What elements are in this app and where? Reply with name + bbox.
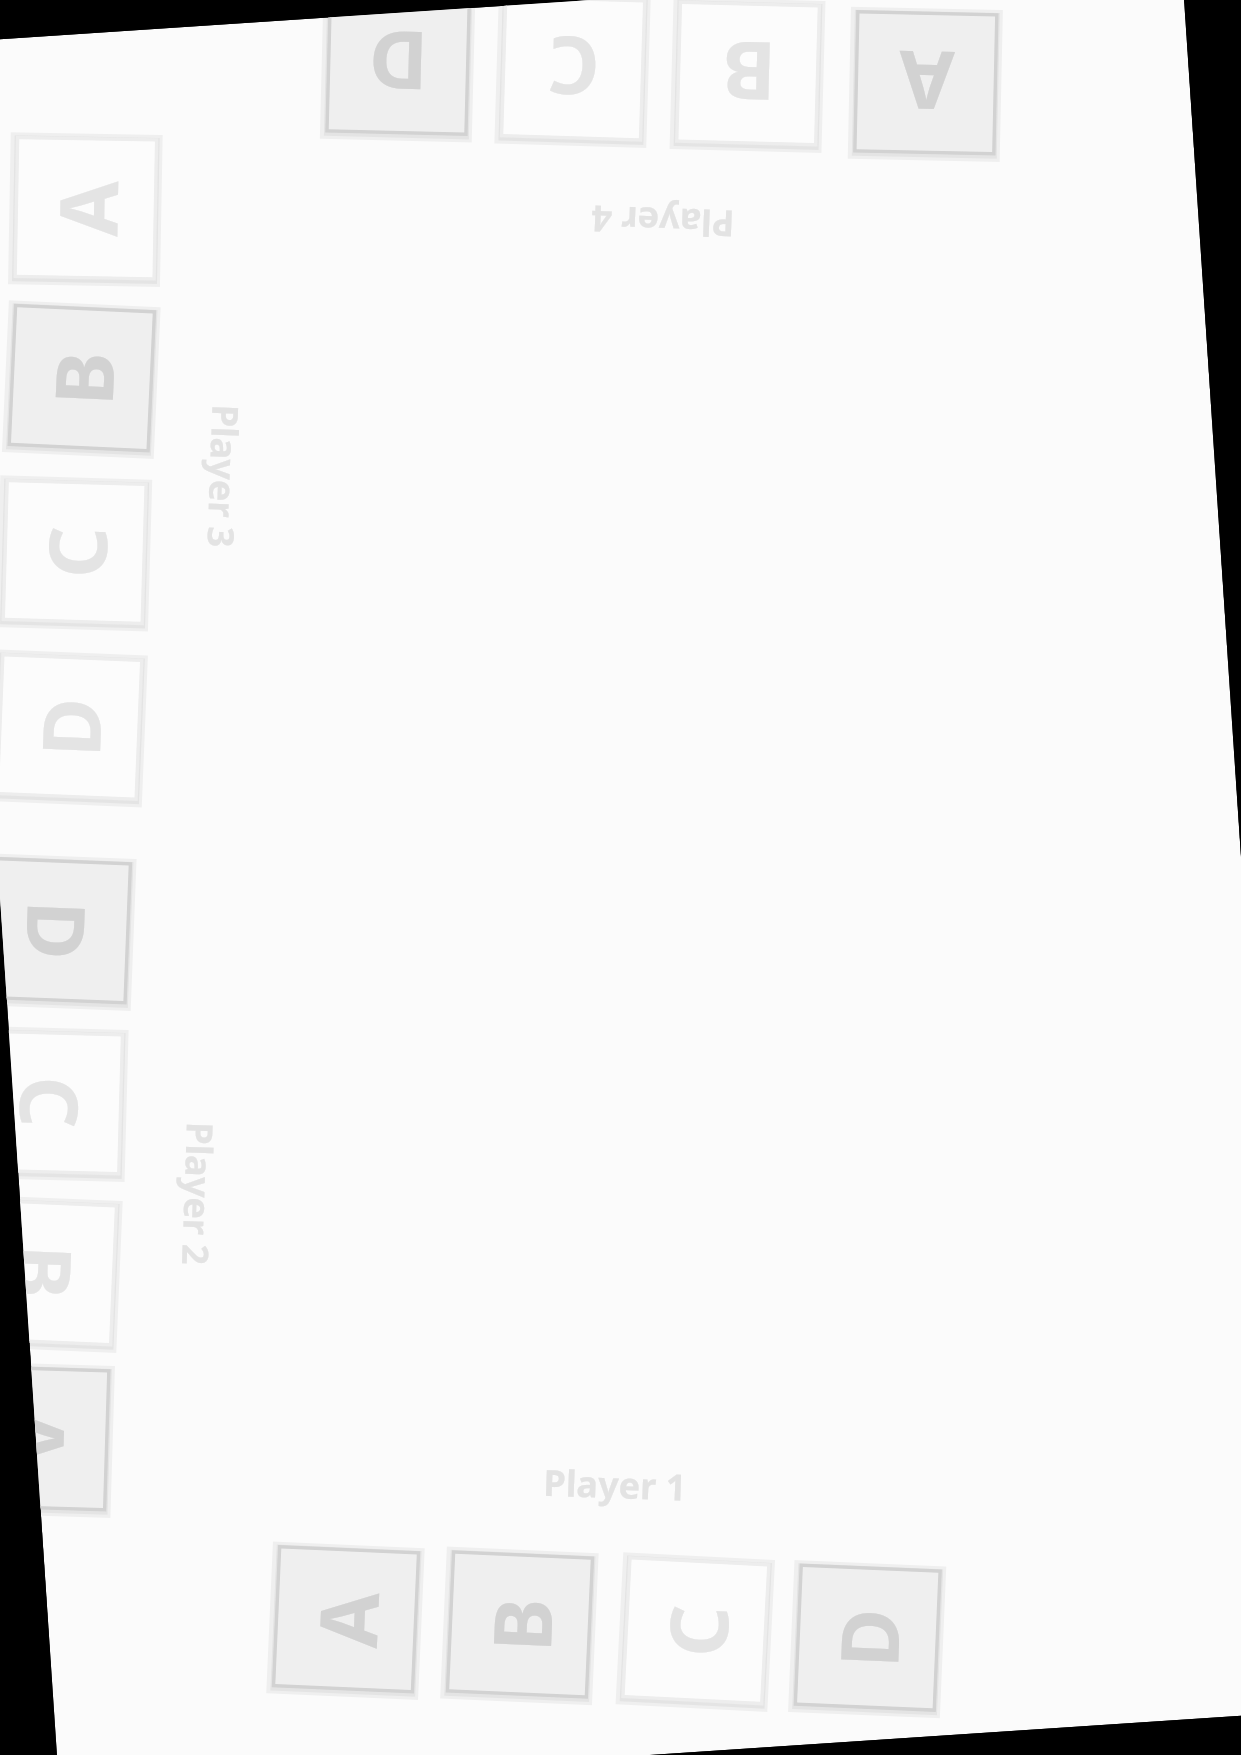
staticText: C bbox=[12, 1067, 111, 1137]
staticText: C bbox=[16, 516, 134, 587]
button[interactable]: Play card D bbox=[318, 8, 480, 145]
button[interactable]: Play card A bbox=[844, 1, 1008, 165]
staticText: A bbox=[888, 23, 964, 142]
staticText: A bbox=[34, 1401, 97, 1472]
button[interactable]: Play card C bbox=[613, 1548, 778, 1713]
button[interactable]: Play card D bbox=[786, 1556, 949, 1719]
staticText: D bbox=[0, 892, 118, 969]
button[interactable]: Play card A bbox=[31, 1357, 119, 1515]
button[interactable]: Play card B bbox=[666, 0, 830, 155]
staticText: B bbox=[712, 14, 785, 133]
button[interactable]: Play card B bbox=[20, 1191, 126, 1350]
staticText: D bbox=[359, 11, 437, 123]
staticText: C bbox=[637, 1595, 756, 1667]
staticText: A bbox=[27, 170, 146, 246]
staticText: A bbox=[287, 1582, 406, 1657]
staticText: C bbox=[538, 9, 609, 127]
button[interactable]: Play card A bbox=[3, 126, 168, 291]
staticText: D bbox=[10, 688, 129, 766]
button[interactable]: Play card C bbox=[9, 1021, 133, 1182]
button[interactable]: Play card D bbox=[0, 645, 151, 808]
staticText: D bbox=[808, 1599, 927, 1677]
staticText: Player 2 bbox=[162, 1118, 234, 1269]
staticText: B bbox=[461, 1588, 580, 1661]
staticText: B bbox=[23, 1236, 104, 1306]
button[interactable]: Play card D bbox=[0, 849, 140, 1011]
staticText: B bbox=[23, 341, 142, 415]
button[interactable]: Play card B bbox=[438, 1543, 602, 1706]
button[interactable]: Play card C bbox=[0, 470, 156, 634]
button[interactable]: Play card C bbox=[492, 0, 655, 150]
staticText: Player 4 bbox=[587, 185, 738, 258]
staticText: Player 3 bbox=[187, 401, 260, 552]
button[interactable]: Play card A bbox=[264, 1537, 428, 1701]
button[interactable]: Play card B bbox=[0, 296, 164, 460]
staticText: Player 1 bbox=[539, 1448, 690, 1521]
